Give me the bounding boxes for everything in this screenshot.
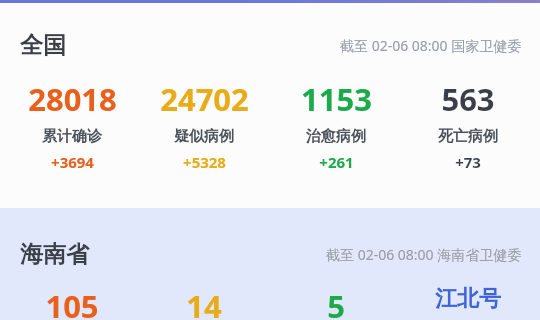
staticText: 治愈病例 [306,127,366,146]
staticText: 24702 [160,78,249,120]
staticText: 疑似病例 [174,127,234,146]
button[interactable]: 563 [402,78,534,172]
staticText: 截至 02-06 08:00 国家卫健委 [340,36,522,55]
staticText: 累计确诊 [42,127,102,146]
button[interactable]: 5 [270,285,402,320]
staticText: 海南省 [20,240,89,269]
staticText: +5328 [183,152,226,172]
staticText: 江北号 [435,285,501,313]
button[interactable]: 1153 [270,78,402,172]
staticText: 1153 [301,78,372,120]
button[interactable]: 105 [6,285,138,320]
staticText: 死亡病例 [438,127,498,146]
staticText: 截至 02-06 08:00 海南省卫健委 [326,245,522,264]
staticText: +3694 [51,152,94,172]
button[interactable]: 28018 [6,78,138,172]
staticText: 全国 [20,31,66,60]
staticText: +73 [455,152,481,172]
staticText: 28018 [28,78,117,120]
staticText: +261 [319,152,354,172]
staticText: 563 [441,78,495,120]
staticText: 5 [327,285,345,320]
staticText: 105 [45,285,99,320]
button[interactable]: 14 [138,285,270,320]
staticText: 14 [186,285,222,320]
button[interactable]: 24702 [138,78,270,172]
